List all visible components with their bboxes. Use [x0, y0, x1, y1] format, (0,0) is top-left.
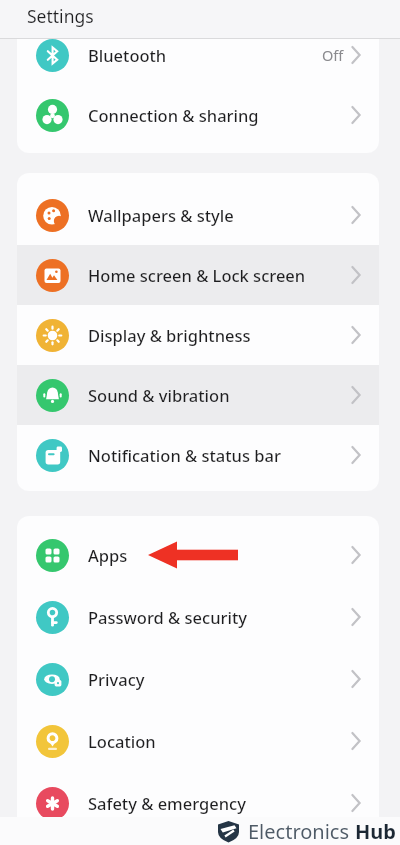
staticText: Safety & emergency: [88, 792, 246, 814]
button[interactable]: Notification & status bar: [17, 425, 379, 485]
button[interactable]: Privacy: [17, 648, 379, 710]
staticText: Location: [88, 730, 156, 752]
button[interactable]: Bluetooth: [17, 39, 379, 78]
staticText: Bluetooth: [88, 44, 167, 66]
button[interactable]: Wallpapers & style: [17, 185, 379, 245]
staticText: Notification & status bar: [88, 444, 281, 466]
staticText: Sound & vibration: [88, 384, 230, 406]
button[interactable]: Apps: [17, 524, 379, 586]
staticText: Hub: [355, 818, 396, 845]
button[interactable]: Home screen & Lock screen: [17, 245, 379, 305]
staticText: Apps: [88, 544, 128, 566]
button[interactable]: Connection & sharing: [17, 85, 379, 145]
staticText: Electronics: [248, 818, 355, 845]
button[interactable]: Password & security: [17, 586, 379, 648]
staticText: Off: [322, 45, 344, 65]
staticText: Connection & sharing: [88, 104, 259, 126]
staticText: Settings: [27, 4, 94, 28]
staticText: Home screen & Lock screen: [88, 264, 306, 286]
staticText: Display & brightness: [88, 324, 251, 346]
button[interactable]: Display & brightness: [17, 305, 379, 365]
staticText: Wallpapers & style: [88, 204, 234, 226]
button[interactable]: Sound & vibration: [17, 365, 379, 425]
button[interactable]: Location: [17, 710, 379, 772]
button[interactable]: Safety & emergency: [17, 772, 379, 834]
staticText: Password & security: [88, 606, 247, 628]
staticText: Privacy: [88, 668, 145, 690]
